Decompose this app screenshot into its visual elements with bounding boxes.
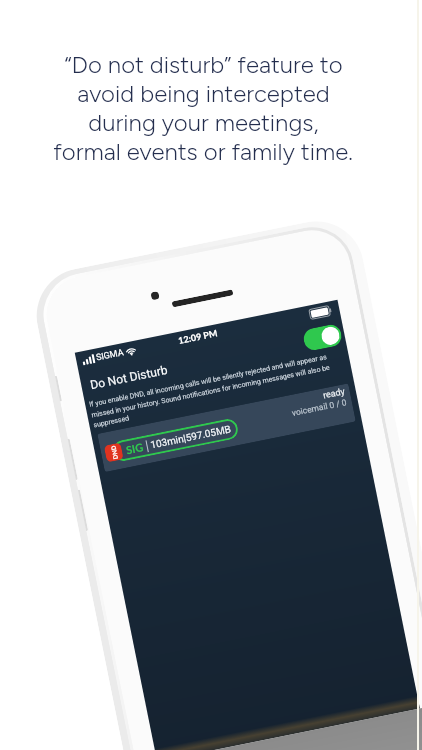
staticText: Do Not Disturb [89, 363, 169, 392]
staticText: DND [109, 445, 119, 460]
staticText: formal events or family time. [53, 137, 353, 166]
staticText: avoid being intercepted [77, 79, 330, 108]
staticText: SIGMA [95, 347, 125, 363]
staticText: 103min|597.05MB [149, 423, 232, 451]
staticText: voicemail 0 / 0 [291, 397, 348, 418]
staticText: ready [322, 386, 346, 401]
button[interactable]: SIG [124, 419, 233, 460]
staticText: during your meetings, [88, 108, 319, 137]
staticText: “Do not disturb” feature to [64, 50, 343, 79]
button[interactable]: Do Not Disturb toggle [302, 323, 343, 352]
staticText: 12:09 PM [177, 327, 219, 346]
staticText: SIG [125, 440, 145, 456]
staticText: If you enable DND, all incoming calls wi… [89, 351, 343, 429]
